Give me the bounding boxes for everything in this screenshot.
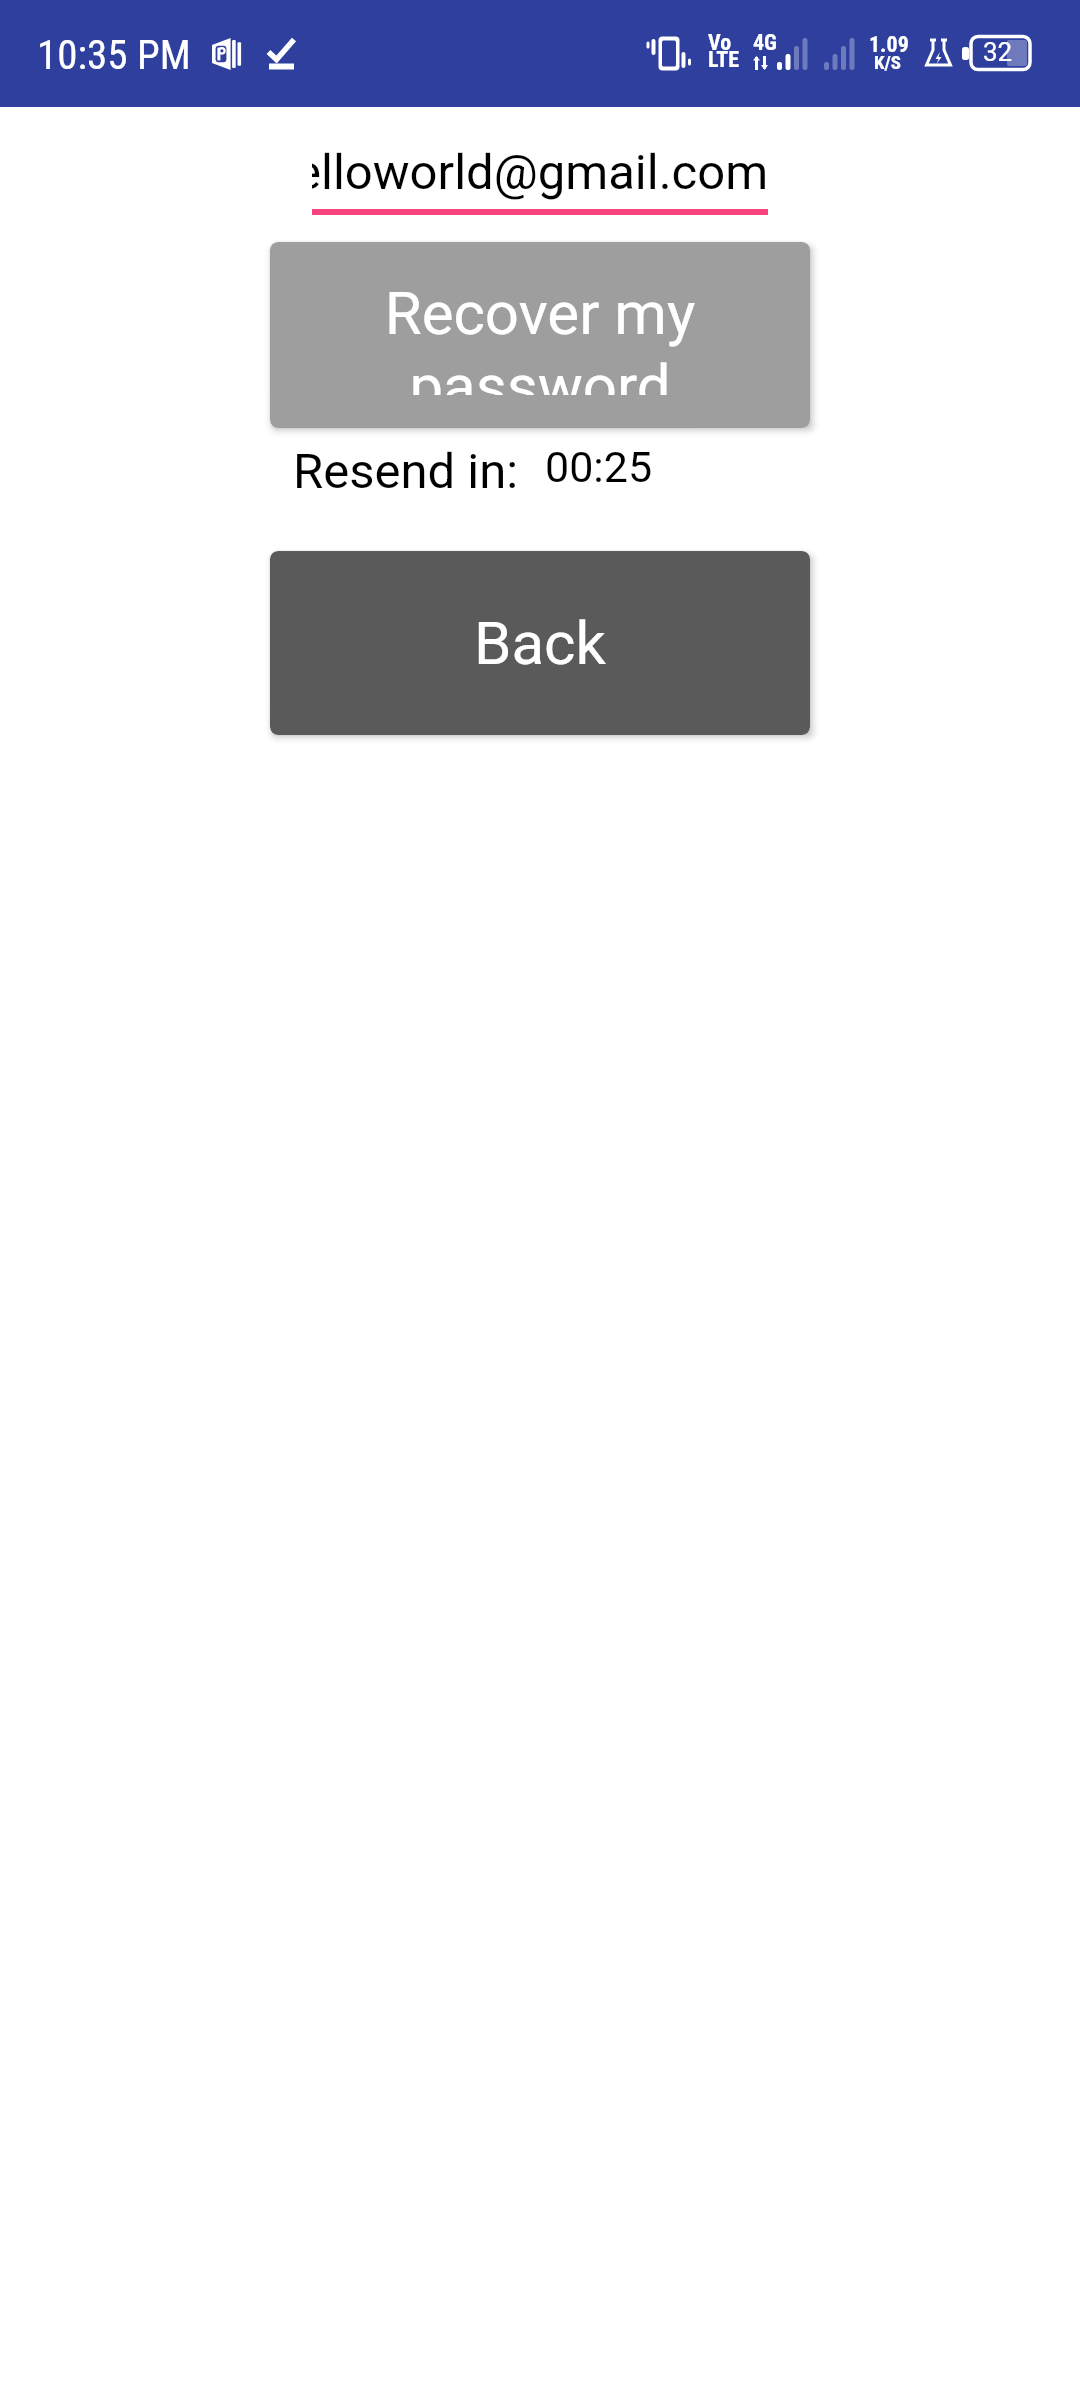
staticText: 00:25 [545,442,653,492]
other: Vibrate mode [646,36,692,72]
staticText: elloworld@gmail.com [312,144,768,201]
other: Developer options [925,38,952,70]
other: Mobile data active [753,56,770,70]
button[interactable]: elloworld@gmail.com [312,144,768,212]
staticText: Recover my password [270,278,810,395]
other: Battery 32 percent [962,36,1032,70]
staticText: 32 [983,37,1013,67]
button[interactable]: Recover my password [270,242,810,428]
staticText: 4G [753,30,777,56]
button[interactable]: Back [270,551,810,735]
staticText: K/S [874,51,902,73]
staticText: 10:35 PM [37,31,191,79]
staticText: Back [474,608,606,678]
staticText: 1.09 [869,32,909,58]
staticText: Resend in: [293,443,519,500]
staticText: Vo [708,30,732,56]
other: Mobile signal SIM 2 [824,38,856,70]
staticText: LTE [708,47,740,73]
other: PowerPoint notification [212,38,242,70]
other: Download complete [268,38,295,70]
other: Mobile signal SIM 1 [777,38,809,70]
